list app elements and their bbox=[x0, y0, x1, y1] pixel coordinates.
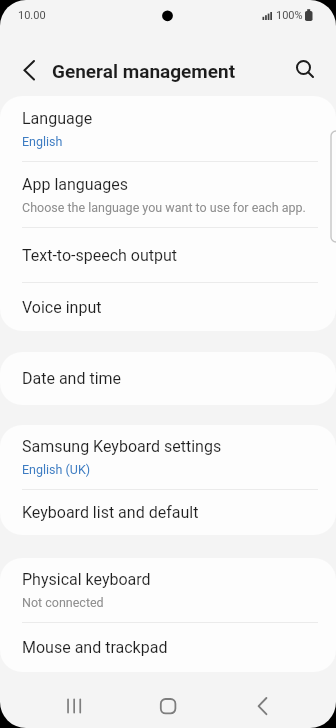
staticText: English (UK) bbox=[22, 462, 91, 477]
button[interactable] bbox=[239, 682, 287, 728]
button[interactable]: Date and time bbox=[0, 352, 336, 405]
staticText: Voice input bbox=[22, 298, 102, 317]
button[interactable]: Keyboard list and default bbox=[0, 490, 336, 535]
button[interactable] bbox=[51, 682, 99, 728]
staticText: Text-to-speech output bbox=[22, 246, 178, 265]
staticText: Language bbox=[22, 109, 93, 128]
button[interactable] bbox=[144, 682, 192, 728]
staticText: 10.00 bbox=[18, 9, 46, 22]
button[interactable] bbox=[5, 46, 53, 94]
button[interactable]: Samsung Keyboard settings bbox=[0, 425, 336, 489]
button[interactable]: Text-to-speech output bbox=[0, 228, 336, 282]
staticText: 100% bbox=[276, 9, 303, 22]
button[interactable]: Voice input bbox=[0, 283, 336, 331]
staticText: Not connected bbox=[22, 595, 104, 610]
staticText: General management bbox=[52, 60, 236, 82]
staticText: Choose the language you want to use for … bbox=[22, 200, 306, 215]
staticText: App languages bbox=[22, 175, 129, 194]
button[interactable]: Language bbox=[0, 96, 336, 161]
button[interactable]: Physical keyboard bbox=[0, 558, 336, 622]
staticText: Keyboard list and default bbox=[22, 503, 199, 522]
staticText: Physical keyboard bbox=[22, 570, 151, 589]
staticText: Date and time bbox=[22, 369, 122, 388]
staticText: Mouse and trackpad bbox=[22, 638, 168, 657]
button[interactable]: Mouse and trackpad bbox=[0, 623, 336, 672]
button[interactable] bbox=[281, 47, 329, 95]
button[interactable]: App languages bbox=[0, 162, 336, 227]
staticText: English bbox=[22, 134, 63, 149]
staticText: Samsung Keyboard settings bbox=[22, 437, 222, 456]
